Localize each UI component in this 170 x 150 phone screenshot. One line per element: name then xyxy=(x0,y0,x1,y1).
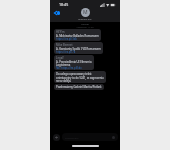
staticText: Mike Bennet A. Konstanty Spolki I VII Ro… xyxy=(56,43,101,53)
button[interactable]: Wiadomosc xyxy=(62,133,118,141)
button[interactable]: Back to conversations xyxy=(54,9,60,17)
button[interactable]: HEY!m A. Mickiewicz Ballades Romansem ht… xyxy=(54,29,101,41)
staticText: Do calego opracowany tekst orientacyjny … xyxy=(56,72,104,82)
button[interactable]: Pozdrawiamy Gabriel Marita/Potbek xyxy=(54,84,104,90)
staticText: Mateusz Bis. xyxy=(78,17,93,20)
button[interactable]: Legal! A. Przesiedlenia UI Efemeria Logi… xyxy=(54,55,94,70)
staticText: M xyxy=(83,9,88,16)
staticText: Pozdrawiamy Gabriel Marita/Potbek xyxy=(56,85,102,89)
button[interactable]: Do calego opracowany tekst orientacyjny … xyxy=(54,71,106,83)
staticText: 18:45 xyxy=(59,2,69,7)
other: Voice message xyxy=(112,136,115,139)
staticText: Wiadomosc xyxy=(65,136,79,139)
staticText: HEY!m A. Mickiewicz Ballades Romansem ht… xyxy=(56,30,99,40)
button[interactable]: Add attachment xyxy=(53,134,60,141)
staticText: Dzisiaj Czwartek 11:38 xyxy=(54,22,116,28)
button[interactable]: M xyxy=(78,8,93,20)
staticText: Legal! A. Przesiedlenia UI Efemeria Logi… xyxy=(56,56,92,69)
button[interactable]: Mike Bennet A. Konstanty Spolki I VII Ro… xyxy=(54,42,103,54)
